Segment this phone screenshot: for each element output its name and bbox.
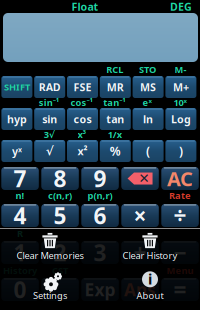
staticText: hyp [7, 112, 27, 126]
button[interactable]: ln [133, 108, 164, 130]
button[interactable]: MR [100, 76, 131, 98]
button[interactable]: Backspace [121, 167, 159, 190]
staticText: CST [52, 264, 68, 277]
staticText: 3 [93, 237, 106, 267]
staticText: Log [171, 112, 191, 126]
staticText: 6 [93, 200, 106, 230]
staticText: 8 [53, 163, 66, 193]
staticText: DEG [170, 0, 192, 14]
button[interactable]: Exp [81, 278, 119, 301]
staticText: MS [140, 80, 156, 94]
staticText: Ans [124, 278, 156, 301]
staticText: Clear Memories [16, 249, 83, 262]
staticText: tan⁻¹ [103, 96, 126, 109]
staticText: 5 [53, 200, 66, 230]
button[interactable]: MS [133, 76, 164, 98]
staticText: AC [167, 165, 193, 192]
staticText: 4 [14, 200, 27, 230]
button[interactable]: − [161, 241, 199, 264]
button[interactable]: % [100, 140, 131, 162]
staticText: Float [71, 0, 98, 14]
staticText: Rate [169, 189, 191, 202]
staticText: Menu [166, 264, 193, 277]
button[interactable]: Log [165, 108, 196, 130]
staticText: − [174, 237, 187, 267]
button[interactable]: M+ [165, 76, 196, 98]
staticText: M- [174, 63, 186, 76]
staticText: × [134, 200, 147, 230]
staticText: = [174, 274, 187, 304]
button[interactable]: √ [34, 140, 65, 162]
button[interactable]: RAD [34, 76, 65, 98]
button[interactable]: sin [34, 108, 65, 130]
staticText: yˣ [12, 144, 22, 158]
button[interactable]: = [161, 278, 199, 301]
staticText: tan [106, 112, 124, 126]
button[interactable]: + [121, 241, 159, 264]
staticText: SHIFT [4, 81, 30, 93]
staticText: 0 [14, 274, 27, 304]
staticText: 1/x [108, 128, 122, 141]
staticText: Exp [84, 278, 115, 301]
button[interactable]: Clear Memories [0, 233, 100, 261]
staticText: RCL [106, 63, 123, 76]
staticText: 10ˣ [173, 96, 187, 109]
button[interactable]: 2 [41, 241, 79, 264]
staticText: p(n,r) [87, 189, 112, 202]
button[interactable]: i [100, 271, 200, 301]
staticText: History [3, 264, 37, 277]
button[interactable]: × [121, 204, 159, 227]
button[interactable]: yˣ [1, 140, 32, 162]
staticText: . [57, 274, 63, 304]
staticText: ln [143, 112, 153, 126]
staticText: sin [42, 112, 57, 126]
staticText: ( [146, 143, 150, 159]
staticText: √ [46, 144, 54, 158]
button[interactable]: Clear History [100, 233, 200, 261]
staticText: About [136, 289, 163, 302]
button[interactable]: . [41, 278, 79, 301]
staticText: ÷ [174, 200, 187, 230]
button[interactable]: SHIFT [1, 76, 32, 98]
staticText: cos [73, 112, 91, 126]
button[interactable]: 9 [81, 167, 119, 190]
button[interactable]: FSE [67, 76, 98, 98]
button[interactable]: hyp [1, 108, 32, 130]
button[interactable]: 7 [1, 167, 39, 190]
button[interactable]: 8 [41, 167, 79, 190]
button[interactable]: ÷ [161, 204, 199, 227]
staticText: 7 [14, 163, 27, 193]
button[interactable]: 6 [81, 204, 119, 227]
staticText: RAD [39, 80, 61, 94]
button[interactable]: ) [165, 140, 196, 162]
staticText: cos⁻¹ [70, 96, 93, 109]
staticText: STO [139, 63, 156, 76]
staticText: 3√ [44, 128, 55, 141]
staticText: c(n,r) [48, 189, 72, 202]
button[interactable]: AC [161, 167, 199, 190]
staticText: 9 [93, 163, 106, 193]
staticText: eˣ [143, 96, 153, 109]
staticText: FSE [73, 80, 91, 94]
button[interactable]: x² [67, 140, 98, 162]
staticText: MR [107, 80, 124, 94]
staticText: i [148, 269, 152, 289]
staticText: % [110, 143, 121, 159]
staticText: n! [15, 189, 24, 202]
button[interactable]: 4 [1, 204, 39, 227]
staticText: x² [77, 144, 87, 158]
button[interactable]: 5 [41, 204, 79, 227]
staticText: ) [179, 143, 183, 159]
button[interactable]: tan [100, 108, 131, 130]
staticText: sin⁻¹ [39, 96, 60, 109]
staticText: 2 [53, 237, 66, 267]
staticText: + [134, 237, 147, 267]
button[interactable]: cos [67, 108, 98, 130]
button[interactable]: ( [133, 140, 164, 162]
button[interactable]: 3 [81, 241, 119, 264]
button[interactable]: 1 [1, 241, 39, 264]
button[interactable]: 0 [1, 278, 39, 301]
button[interactable]: Ans [121, 278, 159, 301]
button[interactable]: Settings [0, 271, 100, 301]
staticText: ✕ [139, 171, 150, 186]
